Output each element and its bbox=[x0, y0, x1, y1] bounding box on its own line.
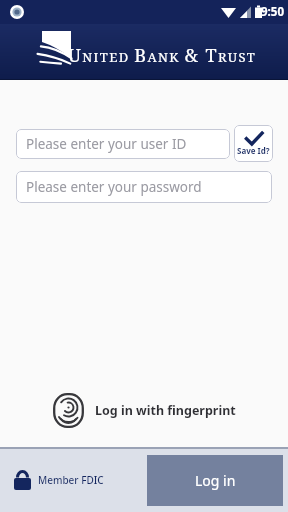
button[interactable]: Log in bbox=[147, 455, 283, 506]
staticText: Please enter your password bbox=[26, 178, 202, 196]
staticText: Log in bbox=[195, 471, 236, 490]
staticText: Log in with fingerprint bbox=[95, 402, 236, 419]
staticText: Please enter your user ID bbox=[26, 135, 187, 153]
button[interactable]: Log in with fingerprint bbox=[0, 393, 288, 428]
staticText: Save Id? bbox=[237, 145, 270, 156]
button[interactable]: Save Id? bbox=[234, 125, 273, 162]
button[interactable]: Please enter your password bbox=[16, 171, 272, 203]
staticText: UNITED BANK & TRUST bbox=[68, 43, 257, 68]
staticText: Member FDIC bbox=[38, 473, 104, 487]
button[interactable]: Member FDIC bbox=[14, 470, 104, 490]
staticText: 9:50 bbox=[261, 4, 284, 20]
button[interactable]: Please enter your user ID bbox=[16, 129, 230, 159]
